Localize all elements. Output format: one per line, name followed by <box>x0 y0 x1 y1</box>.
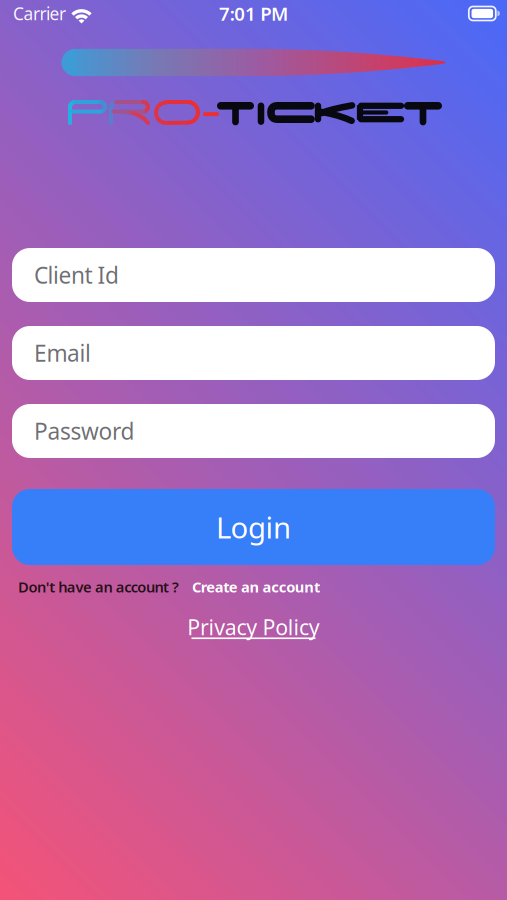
staticText: Carrier <box>13 2 66 25</box>
button[interactable]: Email <box>12 326 495 380</box>
staticText: Don't have an account ? <box>18 577 179 596</box>
staticText: Client Id <box>34 260 119 290</box>
button[interactable]: Privacy Policy <box>181 614 326 641</box>
button[interactable]: Create an account <box>192 577 320 596</box>
button[interactable]: Password <box>12 404 495 458</box>
staticText: Privacy Policy <box>187 613 320 641</box>
staticText: Create an account <box>192 577 320 596</box>
staticText: Password <box>34 416 134 446</box>
staticText: Login <box>216 507 291 546</box>
button[interactable]: Client Id <box>12 248 495 302</box>
staticText: 7:01 PM <box>219 1 288 26</box>
staticText: Email <box>34 338 91 368</box>
button[interactable]: Login <box>12 489 495 565</box>
